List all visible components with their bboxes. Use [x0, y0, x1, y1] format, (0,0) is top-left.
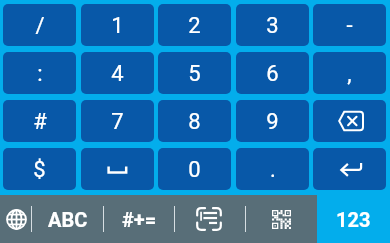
button[interactable]: . [236, 148, 309, 190]
button[interactable]: ABC [32, 195, 103, 243]
staticText: 7 [111, 109, 124, 135]
staticText: 0 [188, 157, 201, 183]
button[interactable]: 1 [81, 4, 154, 46]
button[interactable]: Scan QR code [246, 195, 317, 243]
button[interactable]: Scan text [175, 195, 245, 243]
staticText: 1 [111, 13, 124, 39]
staticText: 123 [336, 208, 371, 231]
staticText: 4 [111, 61, 124, 87]
staticText: / [35, 13, 45, 39]
button[interactable]: : [3, 52, 76, 94]
staticText: 8 [188, 109, 201, 135]
button[interactable]: - [313, 4, 386, 46]
button[interactable]: # [3, 100, 76, 142]
staticText: 5 [188, 61, 201, 87]
button[interactable]: 8 [158, 100, 231, 142]
staticText: : [37, 61, 43, 87]
button[interactable]: Enter [313, 148, 386, 190]
staticText: 3 [266, 13, 279, 39]
button[interactable]: #+= [104, 195, 174, 243]
staticText: - [346, 13, 353, 39]
button[interactable]: / [3, 4, 76, 46]
staticText: #+= [122, 208, 157, 231]
button[interactable]: 4 [81, 52, 154, 94]
button[interactable]: 9 [236, 100, 309, 142]
button[interactable]: 3 [236, 4, 309, 46]
staticText: . [270, 157, 276, 183]
staticText: $ [33, 157, 46, 183]
button[interactable]: $ [3, 148, 76, 190]
button[interactable]: Space [81, 148, 154, 190]
button[interactable]: 2 [158, 4, 231, 46]
staticText: 6 [266, 61, 279, 87]
staticText: , [347, 61, 352, 87]
button[interactable]: 123 [317, 195, 390, 243]
button[interactable]: 0 [158, 148, 231, 190]
button[interactable]: 7 [81, 100, 154, 142]
staticText: # [33, 109, 47, 135]
button[interactable]: , [313, 52, 386, 94]
staticText: 9 [266, 109, 279, 135]
button[interactable]: 6 [236, 52, 309, 94]
staticText: 2 [188, 13, 201, 39]
button[interactable]: 5 [158, 52, 231, 94]
button[interactable]: Change keyboard language [0, 195, 31, 243]
button[interactable]: Backspace [313, 100, 386, 142]
staticText: ABC [48, 208, 88, 231]
